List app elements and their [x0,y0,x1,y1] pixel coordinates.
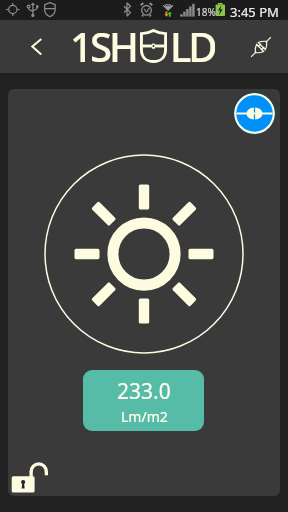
staticText: 18% [196,5,216,19]
staticText: LD [170,19,215,72]
button[interactable]: Back [22,32,52,62]
staticText: 233.0 [117,377,171,406]
button[interactable]: Connect [244,30,278,64]
staticText: 1SH [70,19,136,72]
staticText: 3:45 PM [230,3,279,21]
staticText: Lm/m2 [121,407,168,426]
button[interactable]: Light sensor [234,93,275,134]
button[interactable]: 233.0 [83,370,204,431]
button[interactable]: Unlocked [9,456,53,492]
